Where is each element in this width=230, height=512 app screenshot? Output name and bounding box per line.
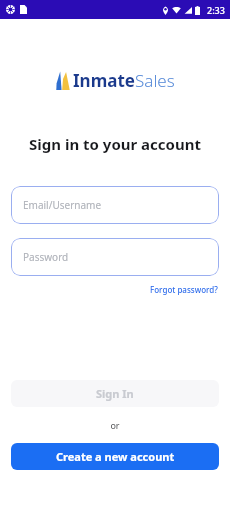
- staticText: Inmate: [73, 69, 135, 92]
- other: InmateSales logo: [56, 71, 70, 91]
- button[interactable]: Sign In: [11, 380, 219, 407]
- staticText: 2:33: [207, 4, 225, 16]
- staticText: or: [0, 419, 230, 431]
- staticText: Email/Username: [23, 198, 102, 212]
- staticText: Sign in to your account: [0, 134, 230, 154]
- staticText: Sign In: [96, 386, 134, 401]
- button[interactable]: Forgot password?: [149, 283, 219, 296]
- staticText: Password: [23, 250, 69, 264]
- button[interactable]: Email/Username: [11, 186, 219, 224]
- button[interactable]: Password: [11, 238, 219, 276]
- button[interactable]: Create a new account: [11, 443, 219, 470]
- staticText: Create a new account: [56, 449, 175, 464]
- staticText: Sales: [135, 69, 175, 92]
- staticText: Forgot password?: [150, 284, 218, 295]
